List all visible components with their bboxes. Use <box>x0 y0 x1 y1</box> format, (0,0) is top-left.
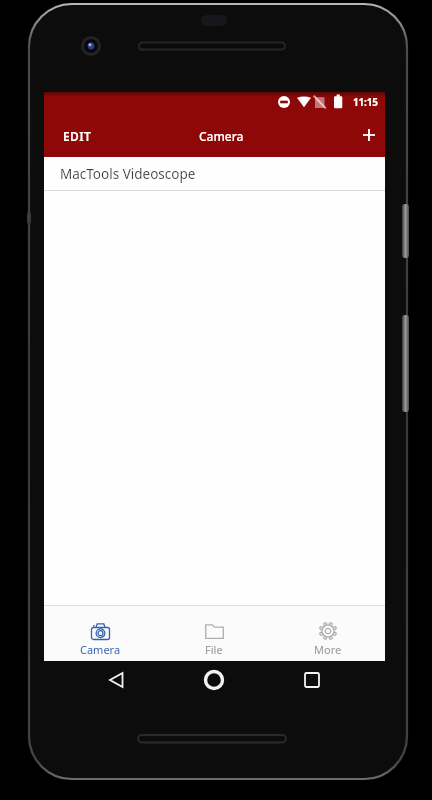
staticText: MacTools Videoscope <box>60 165 196 183</box>
button[interactable]: EDIT <box>44 111 114 157</box>
button[interactable] <box>351 111 385 157</box>
staticText: File <box>205 642 223 657</box>
button[interactable]: More <box>271 606 385 657</box>
staticText: More <box>314 642 342 657</box>
button[interactable]: Camera <box>44 606 157 657</box>
staticText: Camera <box>199 128 244 144</box>
button[interactable] <box>95 662 139 700</box>
staticText: 11:15 <box>353 95 378 109</box>
button[interactable]: MacTools Videoscope <box>44 157 385 190</box>
button[interactable]: File <box>157 606 271 657</box>
button[interactable] <box>290 662 334 700</box>
staticText: EDIT <box>63 128 92 144</box>
staticText: Camera <box>80 642 121 657</box>
button[interactable] <box>192 662 236 700</box>
